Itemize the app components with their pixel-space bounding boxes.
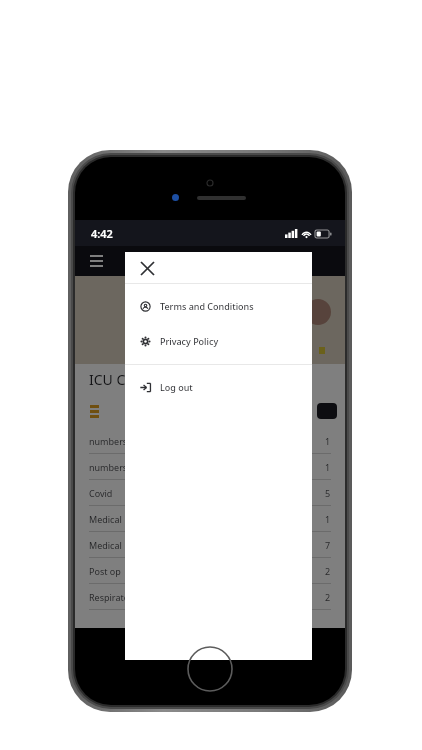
staticText: 2: [325, 565, 331, 577]
staticText: 1: [325, 461, 331, 473]
staticText: 4:42: [91, 226, 113, 241]
staticText: Medical: [89, 513, 122, 525]
staticText: Terms and Conditions: [160, 300, 254, 312]
staticText: numbers: [89, 461, 128, 473]
staticText: Post op: [89, 565, 121, 577]
staticText: Medical: [89, 539, 122, 551]
staticText: 5: [325, 487, 331, 499]
button[interactable]: Terms and Conditions: [125, 293, 312, 319]
staticText: numbers: [89, 435, 128, 447]
button[interactable]: Log out: [125, 374, 312, 400]
staticText: ICU Capacity: [89, 370, 173, 389]
staticText: 7: [325, 539, 331, 551]
staticText: Respiratory: [89, 591, 138, 603]
button[interactable]: Privacy Policy: [125, 328, 312, 354]
staticText: Log out: [160, 381, 193, 393]
staticText: 1: [325, 435, 331, 447]
button[interactable]: Menu: [90, 255, 103, 267]
staticText: 1: [325, 513, 331, 525]
staticText: Covid: [89, 487, 113, 499]
staticText: 2: [325, 591, 331, 603]
staticText: Privacy Policy: [160, 335, 219, 347]
staticText: 4:42: [91, 226, 113, 241]
button[interactable]: Close: [134, 255, 160, 281]
